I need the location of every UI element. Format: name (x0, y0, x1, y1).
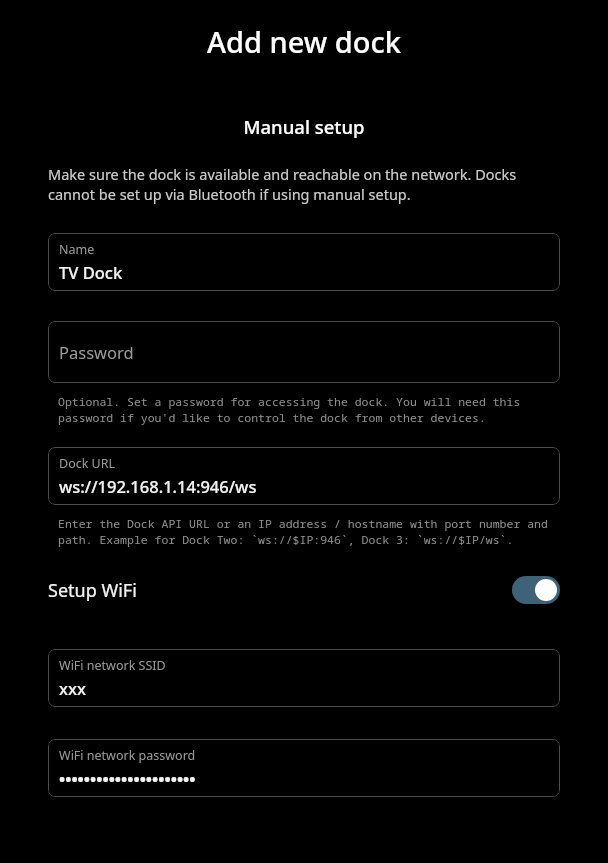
staticText: Password (59, 341, 134, 363)
button[interactable]: Password (48, 321, 560, 383)
staticText: •••••••••••••••••••••• (59, 767, 196, 789)
staticText: Optional. Set a password for accessing t… (58, 394, 556, 425)
button[interactable]: Setup WiFi (48, 567, 560, 613)
staticText: xxx (59, 677, 86, 699)
button[interactable]: Dock URL (48, 447, 560, 505)
staticText: WiFi network password (59, 747, 196, 764)
staticText: Setup WiFi (48, 578, 512, 603)
staticText: Name (59, 241, 95, 258)
button[interactable]: Name (48, 233, 560, 291)
staticText: Enter the Dock API URL or an IP address … (58, 516, 556, 547)
staticText: Dock URL (59, 455, 116, 472)
staticText: Make sure the dock is available and reac… (48, 164, 560, 205)
staticText: WiFi network SSID (59, 657, 166, 674)
button[interactable]: WiFi network password (48, 739, 560, 797)
staticText: Add new dock (0, 22, 608, 61)
button[interactable]: WiFi network SSID (48, 649, 560, 707)
staticText: ws://192.168.1.14:946/ws (59, 475, 257, 497)
staticText: Manual setup (0, 114, 608, 139)
staticText: TV Dock (59, 261, 123, 283)
